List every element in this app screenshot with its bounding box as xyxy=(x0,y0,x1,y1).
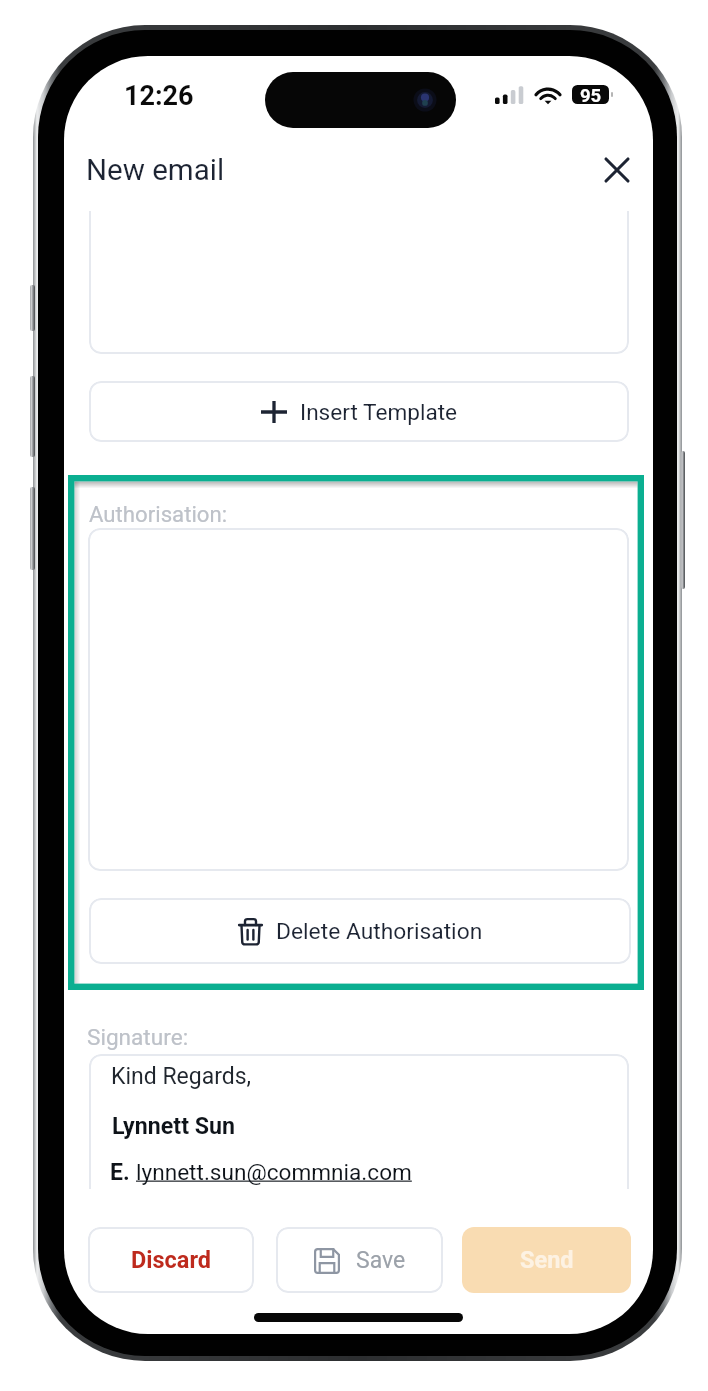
staticText: Insert Template xyxy=(300,399,458,425)
staticText: Save xyxy=(356,1247,406,1274)
staticText: Authorisation: xyxy=(89,501,228,527)
button[interactable]: Delete Authorisation xyxy=(89,898,631,964)
staticText: E. xyxy=(110,1159,136,1186)
button[interactable]: Send xyxy=(462,1227,631,1293)
staticText: Lynnett Sun xyxy=(112,1112,236,1139)
staticText: Delete Authorisation xyxy=(276,918,483,945)
staticText: lynnett.sun@commnia.com xyxy=(136,1159,412,1185)
button[interactable]: Close xyxy=(595,148,639,192)
button[interactable]: Save xyxy=(276,1227,443,1293)
staticText: Signature: xyxy=(87,1024,189,1050)
button[interactable]: Discard xyxy=(88,1227,254,1293)
staticText: 95 xyxy=(580,85,602,104)
staticText: Kind Regards, xyxy=(111,1063,252,1090)
button[interactable]: Insert Template xyxy=(89,381,629,442)
staticText: 12:26 xyxy=(124,80,194,112)
staticText: Discard xyxy=(131,1246,212,1274)
staticText: New email xyxy=(86,153,225,188)
staticText: Send xyxy=(520,1246,574,1274)
